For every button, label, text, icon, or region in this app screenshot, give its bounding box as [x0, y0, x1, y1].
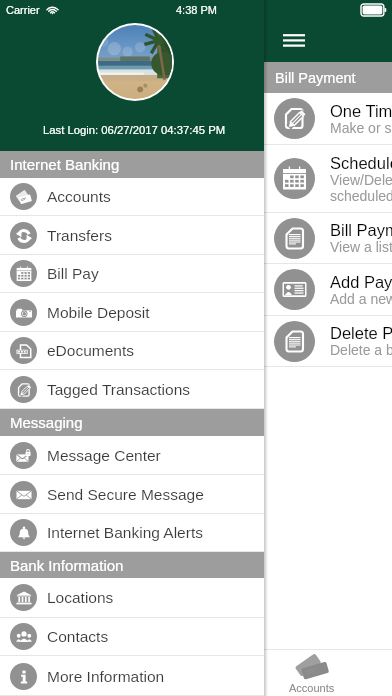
button[interactable]: Bill Payment History — [0, 213, 392, 263]
staticText: Contacts — [47, 628, 109, 645]
staticText: View/Delete scheduled payments — [330, 172, 392, 204]
staticText: Locations — [47, 589, 114, 606]
staticText: View a list of paid — [330, 239, 392, 255]
button[interactable]: Send Secure Message — [0, 475, 264, 513]
button[interactable]: Tagged Transactions — [0, 370, 264, 408]
staticText: Make or schedule a — [330, 120, 392, 136]
staticText: Delete a bill payee — [330, 342, 392, 358]
staticText: Bill Payment History — [330, 221, 392, 239]
staticText: One Time Payment — [330, 102, 392, 120]
button[interactable]: Bill Pay — [0, 255, 264, 292]
staticText: Internet Banking Alerts — [47, 524, 203, 541]
button[interactable]: One Time Payment — [0, 93, 392, 144]
staticText: Add Payee — [330, 273, 392, 291]
staticText: Mobile Deposit — [47, 304, 150, 321]
staticText: Add a new payee — [330, 291, 392, 307]
button[interactable]: Mobile Deposit — [0, 293, 264, 331]
staticText: Bill Payment — [275, 70, 356, 86]
button[interactable]: Scheduled Payments — [0, 145, 392, 212]
staticText: Scheduled Payments — [330, 154, 392, 172]
button[interactable]: Add Payee — [0, 264, 392, 315]
button[interactable]: Internet Banking Alerts — [0, 514, 264, 551]
staticText: Tagged Transactions — [47, 381, 191, 398]
staticText: Accounts — [289, 682, 335, 694]
staticText: eDocuments — [47, 342, 135, 359]
staticText: Bank Information — [10, 557, 124, 574]
button[interactable]: Contacts — [0, 618, 264, 655]
button[interactable]: More Information — [0, 656, 264, 696]
button[interactable]: Delete Payee — [0, 316, 392, 366]
staticText: Messaging — [10, 414, 83, 431]
button[interactable]: Accounts — [285, 654, 339, 694]
button[interactable]: Transfers — [0, 216, 264, 254]
staticText: Message Center — [47, 447, 161, 464]
button[interactable]: Message Center — [0, 436, 264, 474]
staticText: Send Secure Message — [47, 486, 204, 503]
button[interactable]: Accounts — [0, 178, 264, 215]
button[interactable]: Locations — [0, 578, 264, 617]
staticText: Carrier — [6, 4, 40, 16]
staticText: Internet Banking — [10, 156, 120, 173]
staticText: Transfers — [47, 227, 112, 244]
staticText: More Information — [47, 668, 165, 685]
staticText: Bill Pay — [47, 265, 99, 282]
button[interactable]: Open navigation menu — [283, 33, 305, 47]
staticText: Delete Payee — [330, 324, 392, 342]
staticText: 4:38 PM — [176, 4, 217, 16]
staticText: Accounts — [47, 188, 111, 205]
staticText: Last Login: 06/27/2017 04:37:45 PM — [2, 124, 266, 137]
button[interactable]: eDocuments — [0, 332, 264, 369]
